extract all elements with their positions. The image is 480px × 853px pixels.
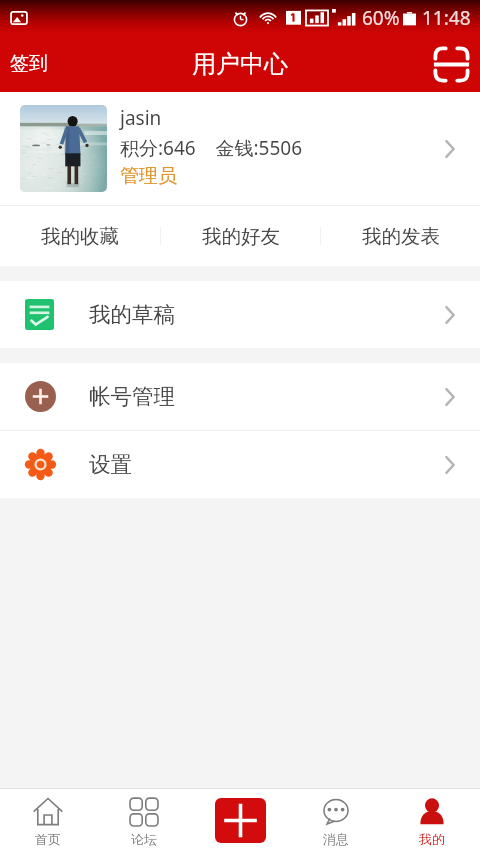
staticText: 积分:646 金钱:5506 [120,135,303,161]
staticText: 我的草稿 [89,301,175,328]
staticText: 消息 [323,831,349,847]
button[interactable]: 我的 [384,788,480,853]
staticText: 首页 [35,831,61,847]
button[interactable]: 论坛 [96,788,192,853]
staticText: 我的收藏 [41,224,119,249]
button[interactable]: 设置 [0,431,480,498]
staticText: 我的好友 [202,224,280,249]
button[interactable]: 我的收藏 [0,206,160,266]
staticText: 我的发表 [362,224,440,249]
staticText: jasin [120,105,162,131]
staticText: 论坛 [131,831,157,847]
staticText: 签到 [10,52,48,76]
button[interactable]: 消息 [288,788,384,853]
button[interactable]: 我的发表 [321,206,480,266]
button[interactable]: New post [192,788,288,853]
button[interactable]: 帐号管理 [0,363,480,430]
staticText: 用户中心 [192,49,288,79]
button[interactable]: 首页 [0,788,96,853]
button[interactable]: jasin [0,92,480,205]
button[interactable]: Scan QR code [428,41,474,87]
button[interactable]: 签到 [0,44,60,84]
staticText: 60% [362,5,400,31]
staticText: 设置 [89,451,132,478]
staticText: 11:48 [422,5,471,31]
button[interactable]: 我的好友 [161,206,320,266]
staticText: 管理员 [120,164,177,188]
button[interactable]: 我的草稿 [0,281,480,348]
staticText: 我的 [419,831,445,847]
staticText: 帐号管理 [89,383,175,410]
